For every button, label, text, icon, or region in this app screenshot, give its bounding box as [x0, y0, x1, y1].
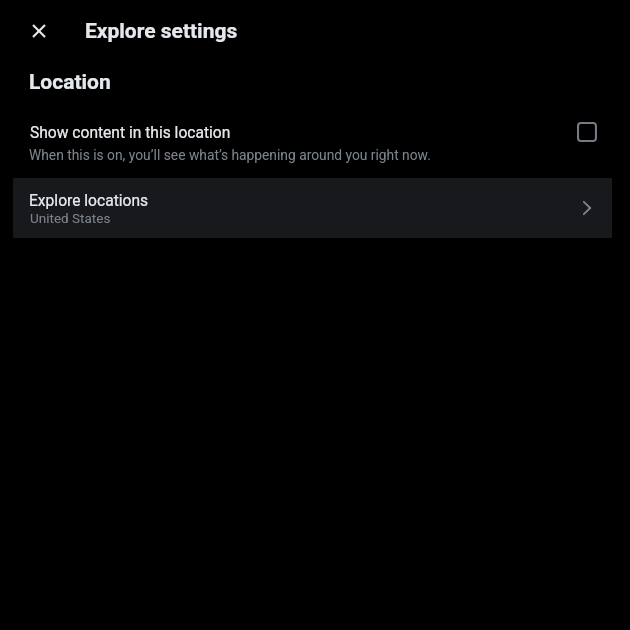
staticText: Location — [29, 70, 111, 95]
staticText: When this is on, you’ll see what’s happe… — [29, 147, 431, 163]
button[interactable]: Explore locations — [13, 178, 612, 238]
button[interactable]: Close — [15, 7, 63, 55]
staticText: Explore settings — [85, 19, 238, 44]
button[interactable]: Show content in this location — [0, 112, 630, 168]
staticText: United States — [30, 210, 111, 226]
button[interactable]: Show content in this location — [565, 110, 609, 154]
staticText: Explore locations — [29, 192, 149, 210]
staticText: Show content in this location — [30, 124, 231, 142]
